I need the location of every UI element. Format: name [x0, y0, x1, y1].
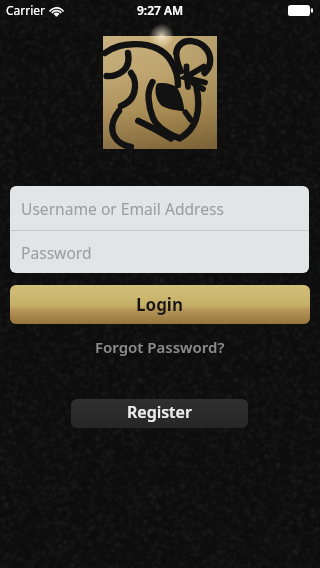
other: Battery — [288, 5, 313, 16]
staticText: Username or Email Address — [21, 198, 224, 219]
other: Wifi — [49, 6, 64, 17]
button[interactable]: Password — [10, 231, 309, 273]
button[interactable]: Forgot Password? — [86, 336, 234, 358]
staticText: Password — [21, 242, 92, 263]
button[interactable]: Username or Email Address — [10, 186, 309, 230]
staticText: Carrier — [6, 2, 46, 18]
button[interactable]: Register — [71, 399, 248, 428]
button[interactable]: Login — [10, 285, 310, 324]
staticText: 9:27 AM — [137, 2, 184, 18]
staticText: Forgot Password? — [95, 337, 225, 357]
staticText: Register — [127, 401, 192, 423]
staticText: Login — [136, 293, 184, 316]
